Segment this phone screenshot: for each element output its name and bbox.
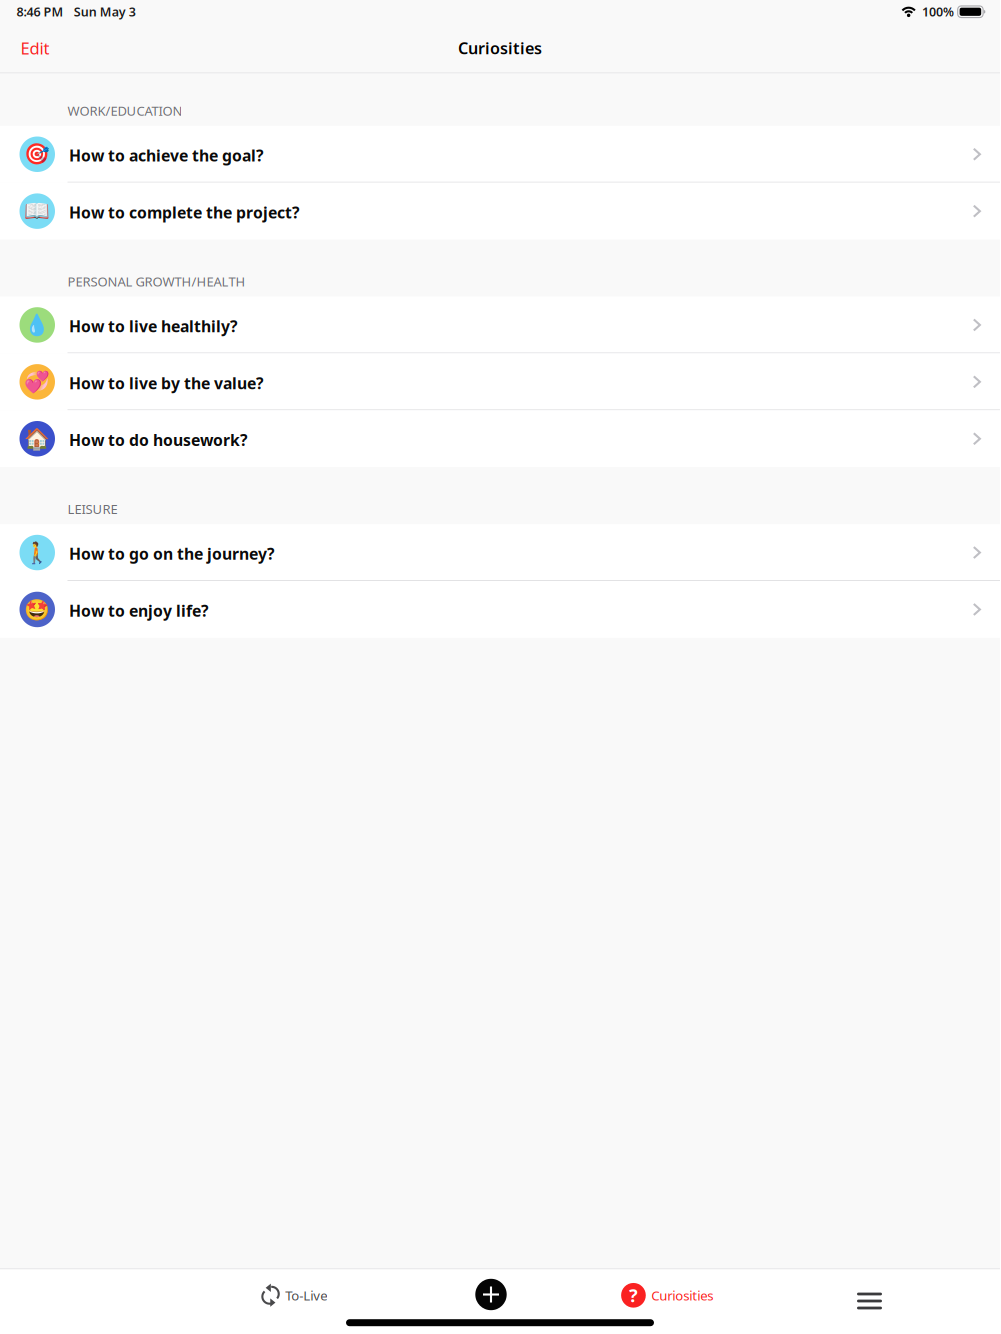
button[interactable]: 🚶 [0, 524, 1000, 581]
button[interactable]: To-Live [251, 1276, 337, 1315]
staticText: 💞 [24, 370, 50, 394]
button[interactable]: Menu [844, 1282, 895, 1319]
button[interactable]: 🤩 [0, 581, 1000, 638]
staticText: Curiosities [458, 37, 542, 59]
staticText: 100% [922, 3, 954, 20]
staticText: How to achieve the goal? [69, 145, 264, 166]
staticText: How to live healthily? [69, 316, 238, 337]
button[interactable]: 🎯 [0, 126, 1000, 183]
button[interactable]: ? [611, 1275, 723, 1316]
staticText: 🎯 [24, 142, 50, 166]
staticText: How to live by the value? [69, 373, 264, 393]
staticText: Curiosities [651, 1286, 713, 1304]
button[interactable]: 📖 [0, 183, 1000, 240]
button[interactable]: 💧 [0, 296, 1000, 353]
staticText: How to do housework? [69, 429, 248, 450]
staticText: 📖 [24, 199, 50, 223]
button[interactable]: 🏠 [0, 410, 1000, 467]
staticText: How to enjoy life? [69, 600, 209, 621]
staticText: 🏠 [24, 427, 50, 450]
button[interactable]: Add [469, 1273, 513, 1316]
staticText: Sun May 3 [74, 3, 136, 20]
staticText: To-Live [285, 1286, 327, 1304]
staticText: 💧 [24, 313, 50, 337]
staticText: 🚶 [24, 541, 50, 564]
staticText: 8:46 PM [16, 3, 63, 20]
staticText: 🤩 [24, 598, 50, 621]
staticText: LEISURE [67, 500, 117, 518]
staticText: How to go on the journey? [69, 543, 275, 564]
button[interactable]: 💞 [0, 353, 1000, 410]
staticText: ? [629, 1283, 638, 1307]
staticText: WORK/EDUCATION [67, 102, 182, 119]
staticText: How to complete the project? [69, 202, 300, 223]
button[interactable]: Edit [0, 27, 64, 69]
staticText: Edit [21, 37, 50, 59]
staticText: PERSONAL GROWTH/HEALTH [67, 273, 245, 290]
